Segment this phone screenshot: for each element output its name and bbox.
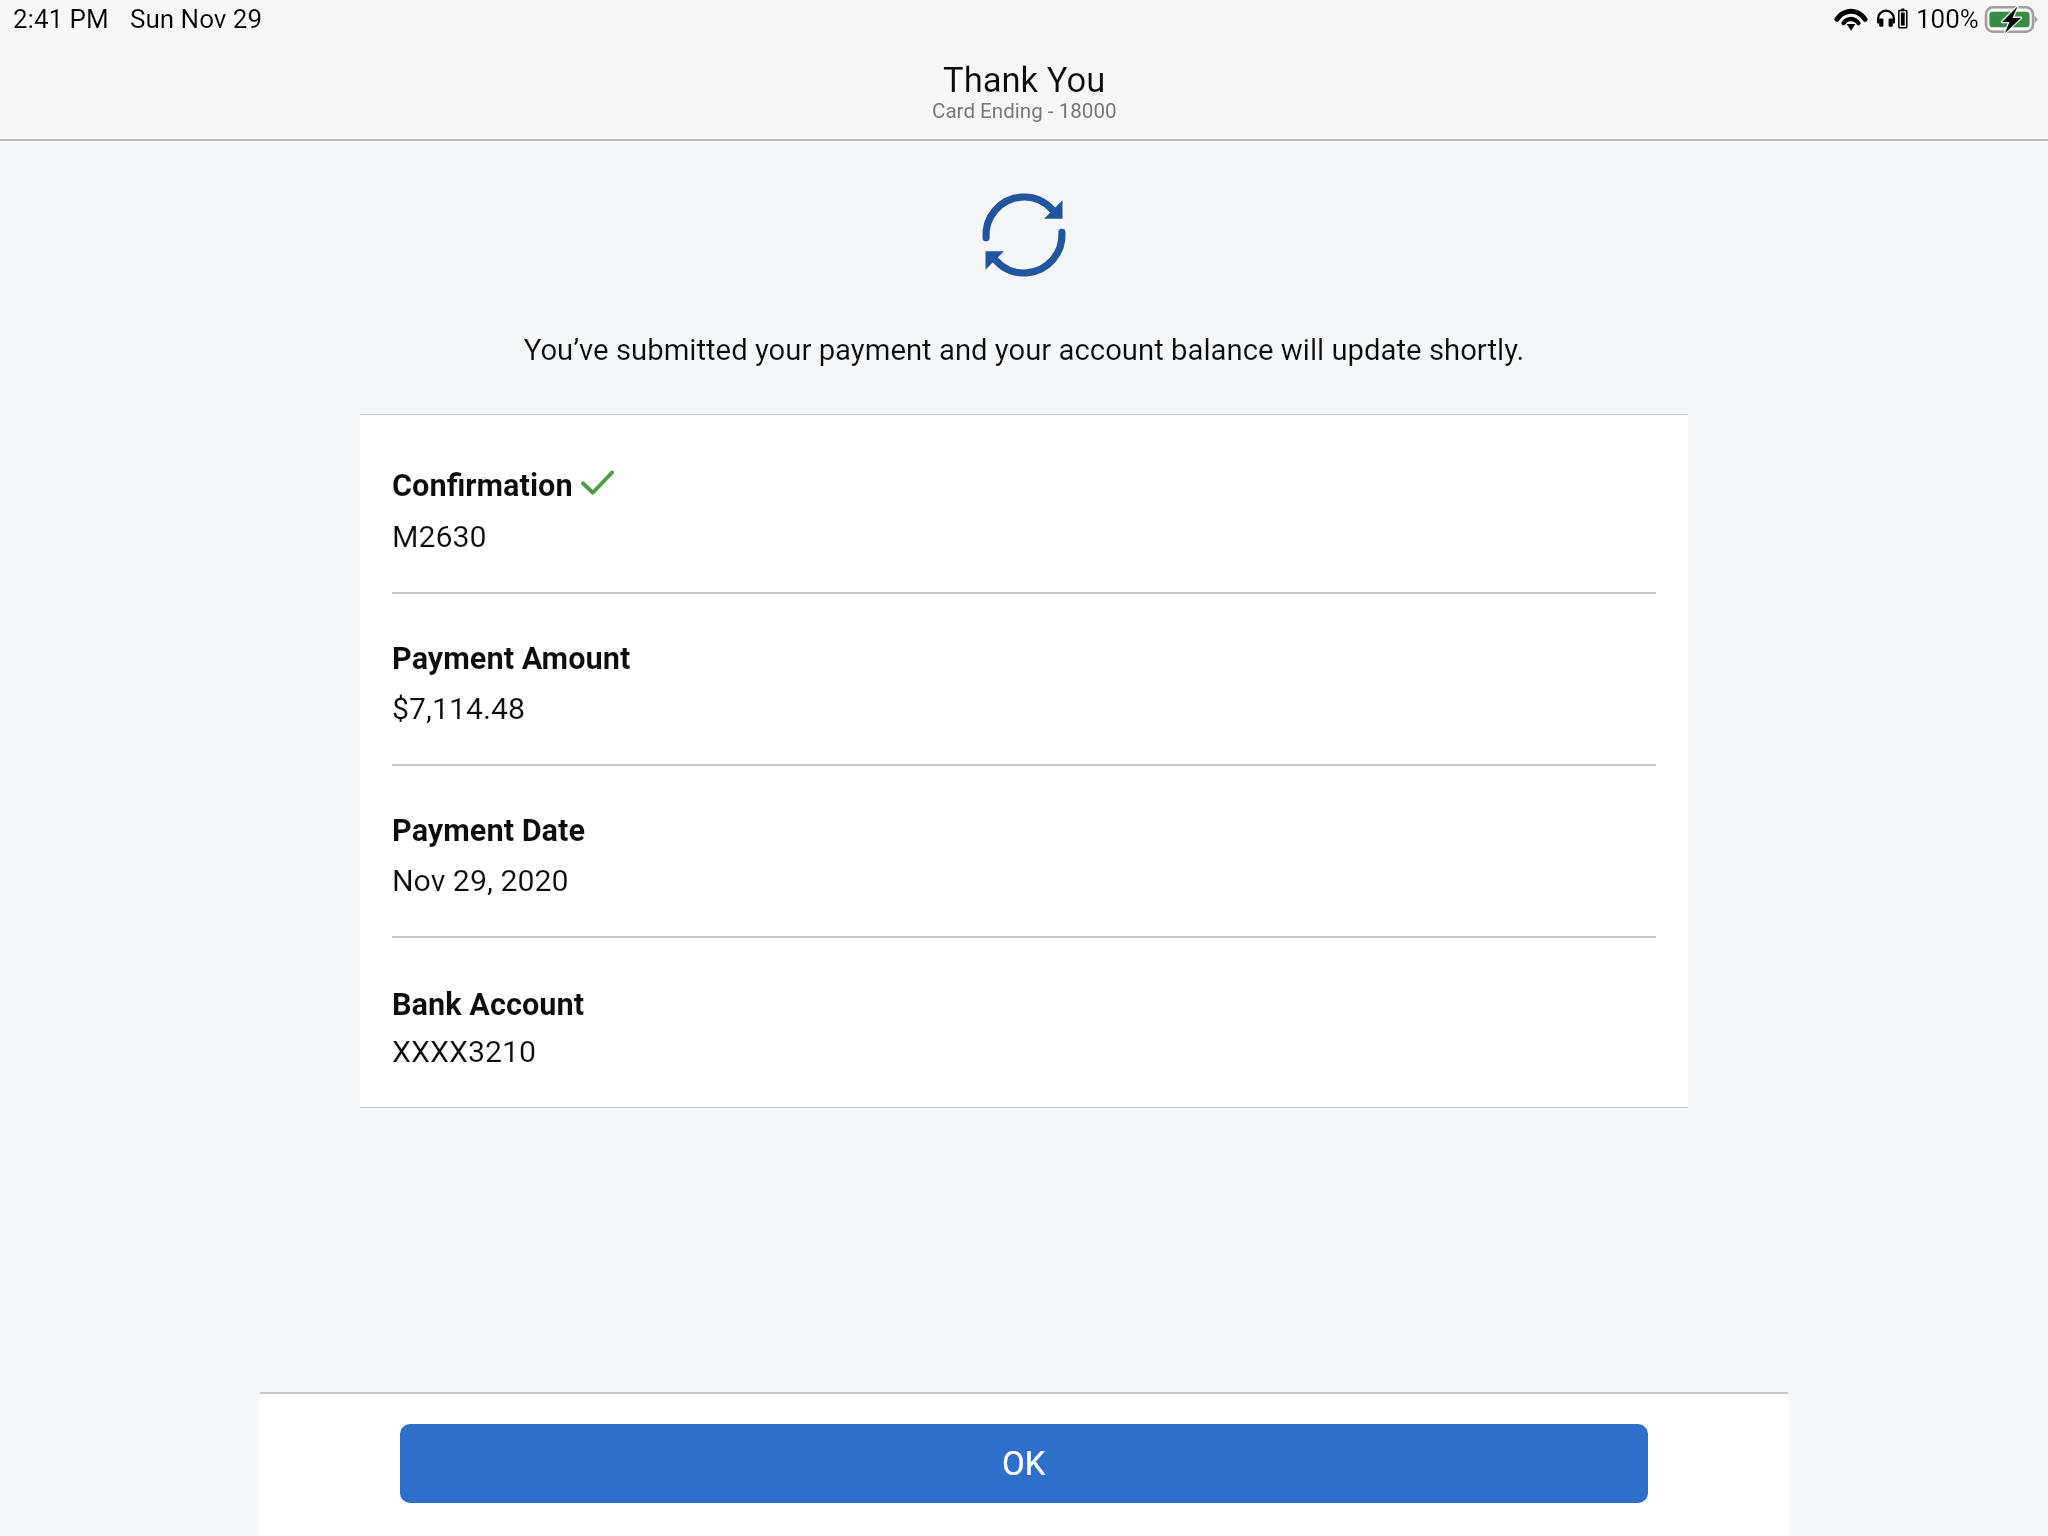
button[interactable]: Payment Amount bbox=[360, 594, 1688, 764]
staticText: Card Ending - 18000 bbox=[932, 99, 1117, 123]
staticText: M2630 bbox=[392, 519, 487, 555]
other: Wi-Fi bbox=[1837, 9, 1865, 31]
button[interactable]: Payment Date bbox=[360, 766, 1688, 936]
staticText: Sun Nov 29 bbox=[130, 4, 263, 34]
staticText: $7,114.48 bbox=[392, 691, 526, 727]
button[interactable]: OK bbox=[400, 1424, 1648, 1503]
staticText: Bank Account bbox=[392, 987, 585, 1023]
staticText: XXXX3210 bbox=[392, 1034, 537, 1070]
staticText: 100% bbox=[1916, 4, 1979, 34]
staticText: Thank You bbox=[943, 60, 1106, 101]
other: Processing bbox=[982, 193, 1066, 277]
staticText: Payment Date bbox=[392, 813, 586, 849]
other: Headphones connected bbox=[1876, 8, 1908, 30]
button[interactable]: Bank Account bbox=[360, 938, 1688, 1107]
staticText: 2:41 PM bbox=[13, 4, 109, 34]
staticText: You’ve submitted your payment and your a… bbox=[0, 333, 2048, 367]
other: Battery 100 percent, charging bbox=[1986, 7, 2038, 32]
staticText: OK bbox=[1002, 1444, 1046, 1483]
staticText: Nov 29, 2020 bbox=[392, 863, 569, 899]
button[interactable]: Confirmation bbox=[360, 415, 1688, 592]
staticText: Confirmation bbox=[392, 468, 573, 504]
staticText: Payment Amount bbox=[392, 641, 631, 677]
